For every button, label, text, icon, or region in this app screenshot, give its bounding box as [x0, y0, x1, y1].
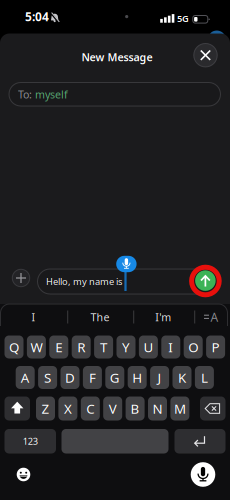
staticText: P: [212, 338, 220, 356]
button[interactable]: P: [206, 335, 225, 358]
button[interactable]: B: [126, 396, 145, 420]
button[interactable]: Close: [194, 43, 217, 67]
button[interactable]: C: [81, 396, 100, 420]
staticText: New Message: [81, 50, 152, 64]
staticText: A: [210, 309, 218, 325]
staticText: O: [188, 338, 198, 356]
staticText: E: [55, 338, 62, 356]
staticText: N: [152, 400, 162, 417]
staticText: Q: [9, 338, 19, 356]
button[interactable]: S: [38, 366, 57, 389]
staticText: myself: [35, 87, 68, 101]
staticText: W: [30, 338, 42, 356]
staticText: R: [77, 338, 85, 356]
button[interactable]: Hello, my name is: [37, 269, 219, 294]
staticText: The: [90, 310, 109, 324]
button[interactable]: I'm: [133, 305, 193, 329]
staticText: V: [109, 400, 117, 417]
button[interactable]: Y: [116, 335, 135, 358]
staticText: G: [110, 369, 120, 386]
button[interactable]: N: [148, 396, 167, 420]
button[interactable]: Q: [4, 335, 23, 358]
staticText: D: [65, 369, 75, 386]
button[interactable]: The: [68, 305, 132, 329]
staticText: 5:04: [25, 8, 49, 24]
staticText: H: [132, 369, 142, 386]
button[interactable]: Dictation: [191, 462, 215, 487]
button[interactable]: F: [83, 366, 102, 389]
staticText: 5G: [177, 12, 189, 24]
staticText: J: [158, 369, 162, 386]
button[interactable]: U: [139, 335, 158, 358]
staticText: Hello, my name is: [46, 275, 122, 288]
button[interactable]: E: [49, 335, 68, 358]
staticText: C: [86, 400, 94, 417]
button[interactable]: X: [58, 396, 77, 420]
button[interactable]: Text mode: [202, 311, 219, 324]
staticText: S: [44, 369, 51, 386]
button[interactable]: Add attachment: [12, 269, 30, 287]
button[interactable]: I: [161, 335, 180, 358]
staticText: T: [100, 338, 107, 356]
button[interactable]: Space: [61, 429, 168, 453]
staticText: Y: [122, 338, 130, 356]
button[interactable]: A: [16, 366, 35, 389]
staticText: I: [168, 338, 173, 356]
staticText: B: [131, 400, 140, 417]
staticText: M: [174, 400, 186, 417]
button[interactable]: L: [195, 366, 214, 389]
button[interactable]: T: [94, 335, 113, 358]
staticText: Z: [41, 400, 49, 417]
button[interactable]: H: [128, 366, 147, 389]
button[interactable]: Numbers: [4, 429, 56, 453]
staticText: F: [89, 369, 96, 386]
staticText: I: [31, 310, 35, 324]
staticText: L: [201, 369, 208, 386]
button[interactable]: K: [172, 366, 191, 389]
button[interactable]: Send: [195, 270, 216, 291]
button[interactable]: Z: [36, 396, 55, 420]
button[interactable]: I: [0, 305, 66, 329]
staticText: I'm: [155, 310, 171, 324]
button[interactable]: Return: [174, 429, 225, 453]
staticText: 123: [23, 435, 38, 447]
staticText: To:: [18, 87, 32, 101]
staticText: A: [21, 369, 30, 386]
staticText: U: [143, 338, 153, 356]
button[interactable]: Shift: [4, 396, 30, 420]
button[interactable]: J: [150, 366, 169, 389]
button[interactable]: D: [60, 366, 79, 389]
button[interactable]: Emoji: [17, 468, 30, 481]
button[interactable]: To:: [9, 82, 220, 106]
button[interactable]: G: [105, 366, 124, 389]
button[interactable]: R: [72, 335, 91, 358]
button[interactable]: M: [170, 396, 189, 420]
button[interactable]: O: [184, 335, 203, 358]
button[interactable]: V: [103, 396, 122, 420]
button[interactable]: Delete: [200, 396, 225, 420]
button[interactable]: W: [27, 335, 46, 358]
staticText: K: [178, 369, 186, 386]
staticText: X: [64, 400, 72, 417]
